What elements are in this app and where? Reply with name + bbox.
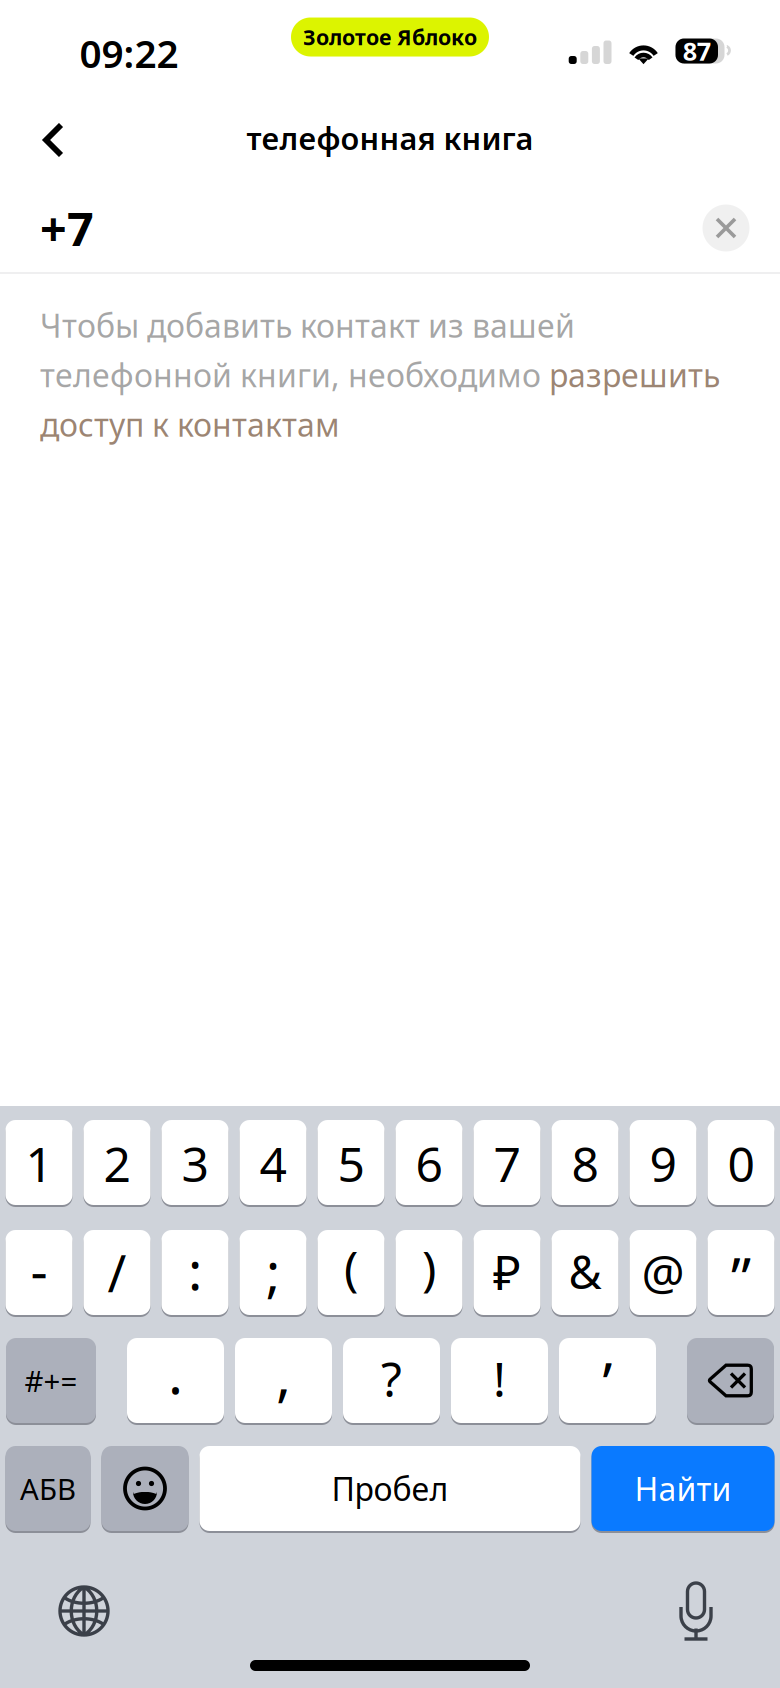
- staticText: (: [344, 1236, 358, 1299]
- button[interactable]: ₽: [473, 1230, 540, 1315]
- staticText: 7: [493, 1132, 520, 1195]
- staticText: 87: [683, 34, 711, 68]
- staticText: +7: [40, 197, 94, 259]
- staticText: Золотое Яблоко: [303, 23, 477, 51]
- button[interactable]: .: [127, 1338, 224, 1423]
- staticText: ₽: [493, 1240, 521, 1303]
- staticText: Пробел: [331, 1467, 448, 1510]
- staticText: 0: [727, 1132, 754, 1195]
- button[interactable]: :: [161, 1230, 228, 1315]
- button[interactable]: /: [83, 1230, 150, 1315]
- button[interactable]: !: [451, 1338, 548, 1423]
- button[interactable]: 3: [161, 1120, 228, 1205]
- staticText: 9: [649, 1132, 676, 1195]
- staticText: 6: [415, 1132, 442, 1195]
- staticText: #+=: [24, 1361, 77, 1400]
- button[interactable]: 0: [707, 1120, 774, 1205]
- button[interactable]: 7: [473, 1120, 540, 1205]
- button[interactable]: ): [395, 1230, 462, 1315]
- staticText: -: [30, 1234, 47, 1305]
- staticText: :: [188, 1234, 202, 1305]
- button[interactable]: ;: [239, 1230, 306, 1315]
- button[interactable]: 1: [5, 1120, 72, 1205]
- button[interactable]: Найти: [591, 1446, 774, 1531]
- staticText: 4: [259, 1132, 286, 1195]
- staticText: телефонной книги, необходимо: [40, 353, 549, 396]
- button[interactable]: Dictation: [677, 1582, 715, 1640]
- button[interactable]: Next keyboard: [58, 1585, 110, 1637]
- button[interactable]: ’: [559, 1338, 656, 1423]
- staticText: /: [107, 1239, 126, 1306]
- button[interactable]: -: [5, 1230, 72, 1315]
- staticText: ;: [266, 1235, 280, 1306]
- button[interactable]: 8: [551, 1120, 618, 1205]
- staticText: ): [422, 1236, 436, 1299]
- button[interactable]: (: [317, 1230, 384, 1315]
- button[interactable]: 4: [239, 1120, 306, 1205]
- staticText: Найти: [634, 1467, 731, 1510]
- staticText: АБВ: [20, 1469, 76, 1508]
- button[interactable]: Clear: [689, 191, 763, 265]
- staticText: 2: [103, 1132, 130, 1195]
- button[interactable]: #+=: [6, 1338, 96, 1423]
- staticText: .: [168, 1335, 183, 1410]
- button[interactable]: Back: [0, 105, 91, 175]
- button[interactable]: Delete: [687, 1338, 774, 1423]
- staticText: 5: [337, 1132, 364, 1195]
- button[interactable]: Emoji: [101, 1446, 188, 1531]
- button[interactable]: Пробел: [199, 1446, 580, 1531]
- button[interactable]: 5: [317, 1120, 384, 1205]
- staticText: телефонная книга: [246, 118, 533, 158]
- button[interactable]: @: [629, 1230, 696, 1315]
- button[interactable]: 9: [629, 1120, 696, 1205]
- button[interactable]: ?: [343, 1338, 440, 1423]
- button[interactable]: АБВ: [5, 1446, 90, 1531]
- staticText: &: [568, 1241, 601, 1302]
- staticText: 1: [25, 1132, 52, 1195]
- staticText: ,: [276, 1337, 291, 1412]
- staticText: доступ к контактам: [40, 403, 340, 445]
- staticText: ?: [381, 1347, 402, 1410]
- button[interactable]: ”: [707, 1230, 774, 1315]
- button[interactable]: 6: [395, 1120, 462, 1205]
- staticText: Чтобы добавить контакт из вашей: [40, 304, 575, 346]
- staticText: 09:22: [79, 27, 178, 79]
- button[interactable]: &: [551, 1230, 618, 1315]
- staticText: 8: [571, 1132, 598, 1195]
- button[interactable]: доступ к контактам: [40, 403, 340, 445]
- staticText: @: [641, 1240, 684, 1303]
- staticText: !: [493, 1347, 506, 1410]
- staticText: разрешить: [549, 353, 720, 396]
- button[interactable]: ,: [235, 1338, 332, 1423]
- staticText: ”: [731, 1240, 751, 1315]
- staticText: 3: [181, 1132, 208, 1195]
- button[interactable]: разрешить: [549, 353, 720, 396]
- staticText: ’: [602, 1345, 612, 1420]
- button[interactable]: 2: [83, 1120, 150, 1205]
